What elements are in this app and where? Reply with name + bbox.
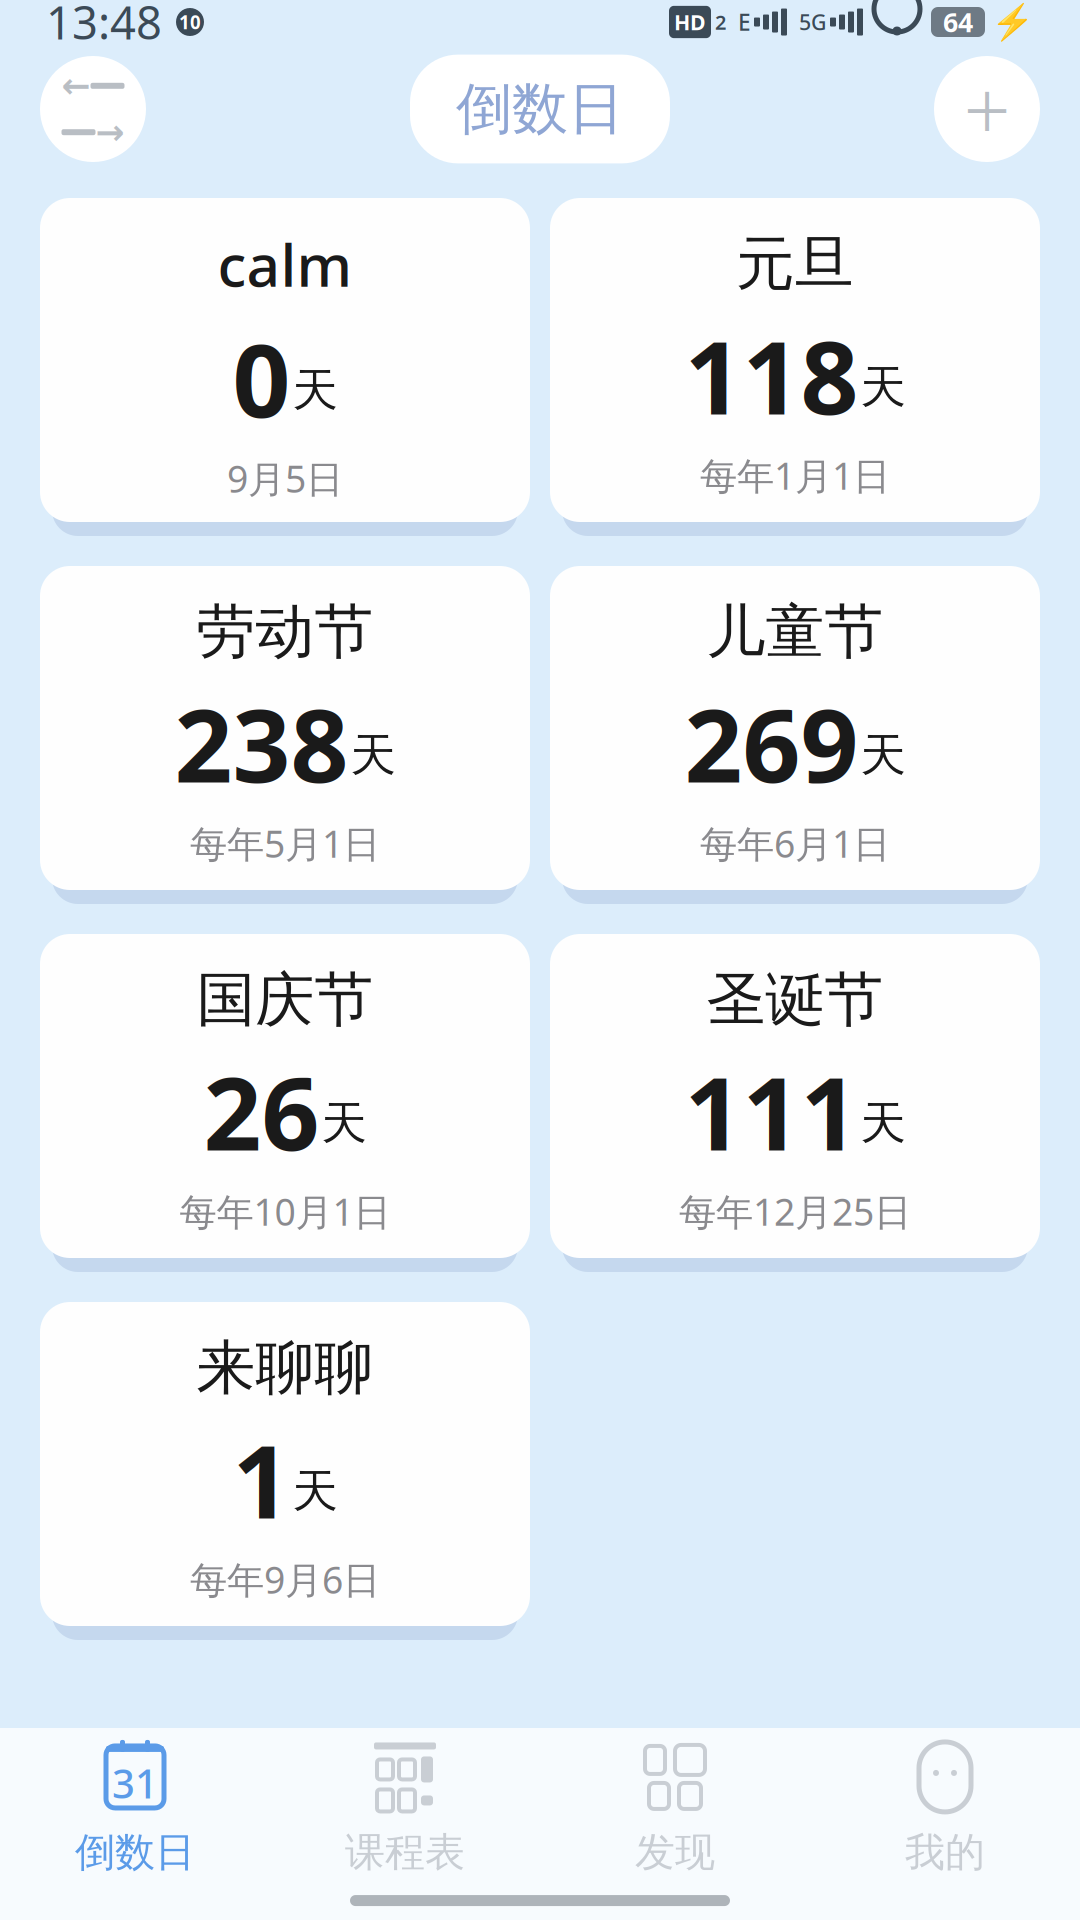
button[interactable]: 我的 [810, 1722, 1080, 1887]
staticText: 每年12月25日 [679, 1186, 911, 1236]
staticText: 每年6月1日 [700, 818, 890, 868]
staticText: 元旦 [736, 228, 854, 300]
staticText: 天 [860, 727, 905, 783]
staticText: 111 [684, 1044, 858, 1179]
button[interactable]: 圣诞节 [550, 920, 1040, 1272]
staticText: 来聊聊 [196, 1332, 373, 1404]
staticText: 10 [179, 10, 201, 34]
staticText: 我的 [905, 1828, 985, 1877]
staticText: E [738, 7, 751, 37]
staticText: 天 [350, 727, 395, 783]
staticText: + [963, 54, 1010, 164]
button[interactable]: 发现 [540, 1722, 810, 1887]
staticText: 每年1月1日 [700, 450, 890, 500]
staticText: 圣诞节 [706, 964, 883, 1036]
button[interactable]: 来聊聊 [40, 1288, 530, 1640]
button[interactable]: 倒数日 [410, 55, 670, 163]
button[interactable]: 31 [0, 1722, 270, 1887]
staticText: 118 [684, 308, 858, 443]
staticText: 0 [232, 311, 290, 445]
staticText: 5G [799, 8, 827, 36]
staticText: 9月5日 [227, 453, 343, 503]
staticText: 天 [860, 359, 905, 415]
button[interactable]: 课程表 [270, 1722, 540, 1887]
staticText: 每年9月6日 [190, 1554, 380, 1604]
staticText: 课程表 [345, 1828, 465, 1877]
button[interactable]: 劳动节 [40, 552, 530, 904]
staticText: 劳动节 [196, 596, 373, 668]
staticText: calm [217, 225, 352, 303]
staticText: 64 [943, 4, 973, 40]
staticText: 1 [232, 1412, 290, 1547]
staticText: 国庆节 [196, 964, 373, 1036]
staticText: 269 [684, 676, 858, 811]
staticText: 倒数日 [75, 1828, 195, 1877]
staticText: ⚡ [991, 2, 1034, 42]
button[interactable]: 国庆节 [40, 920, 530, 1272]
staticText: 天 [292, 362, 337, 418]
staticText: 26 [203, 1044, 319, 1179]
staticText: 天 [292, 1463, 337, 1519]
staticText: 13:48 [46, 0, 162, 52]
staticText: 天 [860, 1095, 905, 1151]
staticText: 2 [715, 9, 726, 35]
button[interactable]: Switch view [40, 56, 146, 162]
staticText: 发现 [635, 1828, 715, 1877]
staticText: 倒数日 [456, 75, 624, 143]
staticText: 儿童节 [706, 596, 883, 668]
staticText: 每年10月1日 [179, 1186, 390, 1236]
staticText: ← [61, 66, 90, 105]
staticText: HD [674, 8, 706, 36]
button[interactable]: calm [40, 184, 530, 536]
button[interactable]: 儿童节 [550, 552, 1040, 904]
staticText: 31 [112, 1756, 158, 1809]
staticText: 每年5月1日 [190, 818, 380, 868]
staticText: 238 [174, 676, 348, 811]
button[interactable]: 元旦 [550, 184, 1040, 536]
staticText: → [95, 112, 124, 152]
staticText: 天 [321, 1095, 366, 1151]
button[interactable]: Add countdown [934, 54, 1040, 164]
